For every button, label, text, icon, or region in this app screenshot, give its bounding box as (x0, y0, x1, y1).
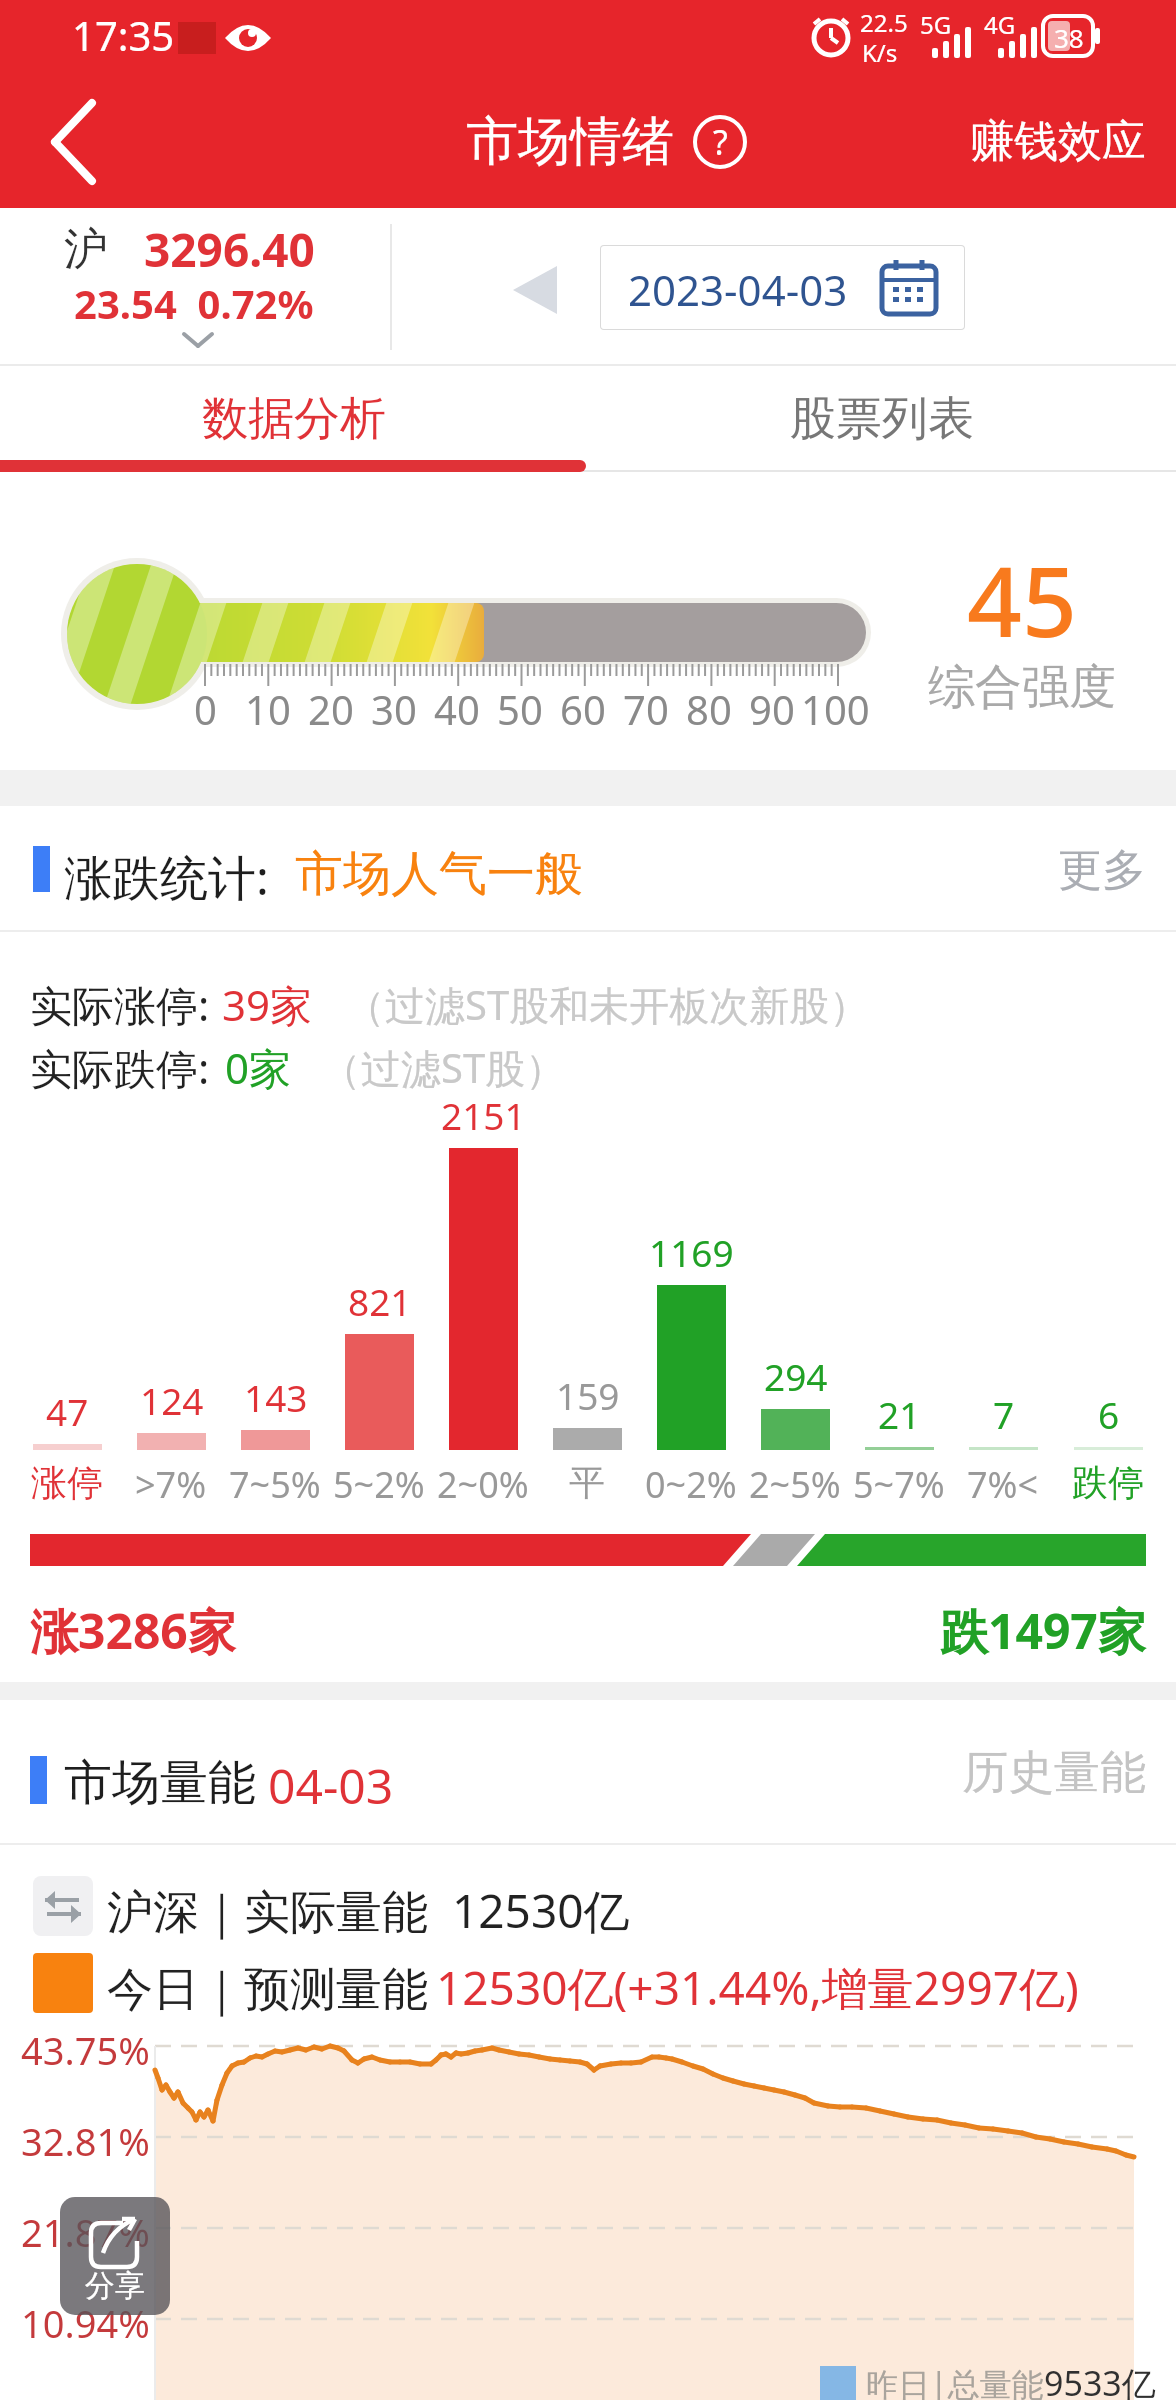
staticText: 159 (556, 1370, 620, 1420)
staticText: 0~2% (645, 1460, 737, 1509)
staticText: （过滤ST股） (321, 1040, 566, 1095)
button[interactable]: 历史量能 (962, 1744, 1146, 1802)
staticText: 43.75% (21, 2024, 150, 2076)
staticText: 32.81% (21, 2115, 150, 2167)
staticText: 历史量能 (962, 1744, 1146, 1802)
staticText: 100 (801, 682, 870, 736)
staticText: 5G (920, 8, 952, 41)
button[interactable]: 沪 (0, 208, 392, 366)
staticText: 143 (244, 1372, 308, 1422)
staticText: 2023-04-03 (628, 261, 848, 318)
staticText: K/s (862, 36, 898, 69)
staticText: 30 (371, 682, 417, 736)
staticText: 47 (46, 1386, 89, 1436)
staticText: 12530亿(+31.44%,增量2997亿) (436, 1956, 1079, 2019)
staticText: 821 (348, 1276, 412, 1326)
staticText: 5~2% (333, 1460, 425, 1509)
button[interactable]: 赚钱效应 (970, 114, 1146, 169)
staticText: （过滤ST股和未开板次新股） (345, 977, 870, 1032)
staticText: >7% (135, 1460, 207, 1509)
button[interactable]: 分享 (60, 2197, 170, 2315)
staticText: 涨停 (31, 1460, 103, 1505)
staticText: 市场情绪 (466, 109, 674, 175)
staticText: 今日｜预测量能 (107, 1956, 441, 2019)
button[interactable] (513, 266, 557, 314)
staticText: 平 (569, 1460, 605, 1505)
staticText: 实际跌停: (30, 1039, 210, 1096)
staticText: 0 (194, 682, 217, 736)
staticText: 昨日|总量能 (866, 2362, 1044, 2400)
staticText: 沪深｜实际量能 12530亿 (107, 1879, 630, 1942)
staticText: 7~5% (229, 1460, 321, 1509)
staticText: 5~7% (853, 1460, 945, 1509)
staticText: 更多 (1058, 843, 1146, 898)
staticText: 2151 (441, 1090, 526, 1140)
staticText: 实际涨停: (30, 976, 210, 1033)
staticText: 80 (686, 682, 732, 736)
staticText: 数据分析 (202, 390, 386, 448)
staticText: 20 (308, 682, 354, 736)
button[interactable]: 数据分析 (0, 366, 588, 472)
staticText: 10 (245, 682, 291, 736)
staticText: 涨跌统计: (64, 844, 269, 910)
staticText: 38 (1054, 20, 1084, 55)
staticText: 39家 (222, 976, 313, 1033)
staticText: 4G (984, 8, 1016, 41)
staticText: 22.5 (860, 6, 908, 39)
staticText: 45 (967, 534, 1077, 665)
staticText: 7%< (967, 1460, 1039, 1509)
staticText: 124 (140, 1375, 204, 1425)
button[interactable] (30, 95, 120, 190)
staticText: 跌1497家 (940, 1598, 1146, 1664)
staticText: 50 (497, 682, 543, 736)
staticText: 综合强度 (928, 658, 1116, 717)
staticText: 70 (623, 682, 669, 736)
staticText: 17:35 (72, 8, 175, 62)
staticText: 市场量能 (64, 1753, 256, 1813)
staticText: 21 (878, 1389, 921, 1439)
staticText: 6 (1098, 1389, 1120, 1439)
staticText: 40 (434, 682, 480, 736)
button[interactable]: 2023-04-03 (600, 245, 965, 330)
staticText: 沪 (64, 222, 108, 277)
staticText: 赚钱效应 (970, 114, 1146, 169)
staticText: 涨3286家 (30, 1598, 236, 1664)
staticText: 90 (749, 682, 795, 736)
staticText: 10.94% (21, 2297, 150, 2349)
staticText: 9533亿 (1044, 2360, 1156, 2400)
staticText: ? (713, 119, 728, 165)
staticText: 0家 (225, 1039, 292, 1096)
staticText: 23.54 0.72% (74, 276, 314, 330)
staticText: 跌停 (1072, 1460, 1144, 1505)
staticText: 60 (560, 682, 606, 736)
staticText: 3296.40 (144, 218, 315, 281)
staticText: 1169 (649, 1227, 734, 1277)
staticText: 294 (764, 1351, 828, 1401)
staticText: 21.87% (21, 2206, 150, 2258)
button[interactable]: 股票列表 (588, 366, 1176, 472)
staticText: 04-03 (268, 1753, 394, 1818)
staticText: 2~5% (749, 1460, 841, 1509)
staticText: 股票列表 (790, 390, 974, 448)
button[interactable]: 更多 (1058, 843, 1146, 898)
staticText: 市场人气一般 (295, 844, 583, 904)
staticText: 分享 (85, 2267, 145, 2305)
staticText: 7 (993, 1389, 1015, 1439)
staticText: 2~0% (437, 1460, 529, 1509)
